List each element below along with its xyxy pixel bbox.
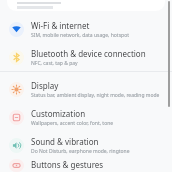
staticText: Status bar, ambient display, night mode,… <box>31 92 160 99</box>
staticText: Do Not Disturb, earphone mode, ringtone <box>31 148 130 155</box>
button[interactable]: Buttons and gestures <box>0 159 172 172</box>
staticText: Buttons & gestures <box>31 159 104 170</box>
staticText: SIM, mobile network, data usage, hotspot <box>31 32 129 39</box>
staticText: Customization <box>31 108 86 119</box>
staticText: Bluetooth & device connection <box>31 48 146 59</box>
staticText: Wi-Fi & internet <box>31 20 90 31</box>
button[interactable]: Customization <box>0 103 172 131</box>
staticText: Display <box>31 80 59 91</box>
staticText: Wallpapers, accent color, font, tone <box>31 120 114 127</box>
staticText: Sound & vibration <box>31 136 99 147</box>
button[interactable]: Display <box>0 75 172 103</box>
button[interactable] <box>7 0 165 11</box>
staticText: NFC, cast, tap & pay <box>31 60 78 67</box>
button[interactable]: Wi-Fi and internet <box>0 15 172 43</box>
button[interactable]: Sound and vibration <box>0 131 172 159</box>
button[interactable]: Bluetooth and device connection <box>0 43 172 71</box>
